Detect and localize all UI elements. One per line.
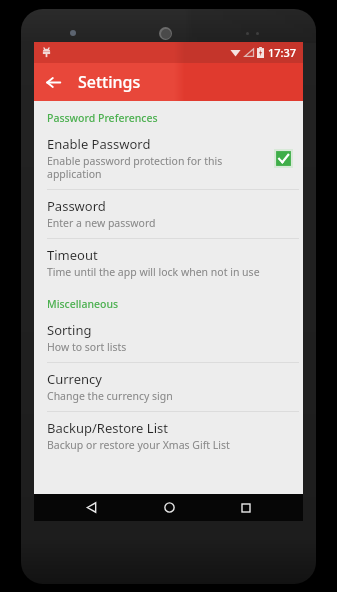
button[interactable]: Enable Password [34,128,303,189]
button[interactable]: Currency [34,363,303,411]
staticText: Enable password protection for this appl… [47,154,266,181]
button[interactable]: Password [34,190,303,238]
staticText: Timeout [47,246,98,264]
staticText: Backup or restore your Xmas Gift List [47,438,230,452]
button[interactable]: Home [148,494,190,521]
button[interactable]: Sorting [34,314,303,362]
staticText: Settings [78,71,141,93]
staticText: Time until the app will lock when not in… [47,265,260,279]
button[interactable]: Back [34,63,72,101]
button[interactable]: Enable Password checkbox [274,149,293,168]
button[interactable]: Timeout [34,239,303,287]
staticText: Enter a new password [47,216,156,230]
staticText: Backup/Restore List [47,419,168,437]
staticText: Sorting [47,321,92,339]
staticText: Change the currency sign [47,389,173,403]
staticText: 17:37 [268,45,297,60]
staticText: Password Preferences [47,111,158,125]
staticText: Password [47,197,106,215]
button[interactable]: Backup/Restore List [34,412,303,460]
staticText: How to sort lists [47,340,127,354]
staticText: Currency [47,370,102,388]
button[interactable]: Recent apps [225,494,267,521]
button[interactable]: Back [70,494,112,521]
staticText: Enable Password [47,135,151,153]
staticText: Miscellaneous [47,297,119,311]
